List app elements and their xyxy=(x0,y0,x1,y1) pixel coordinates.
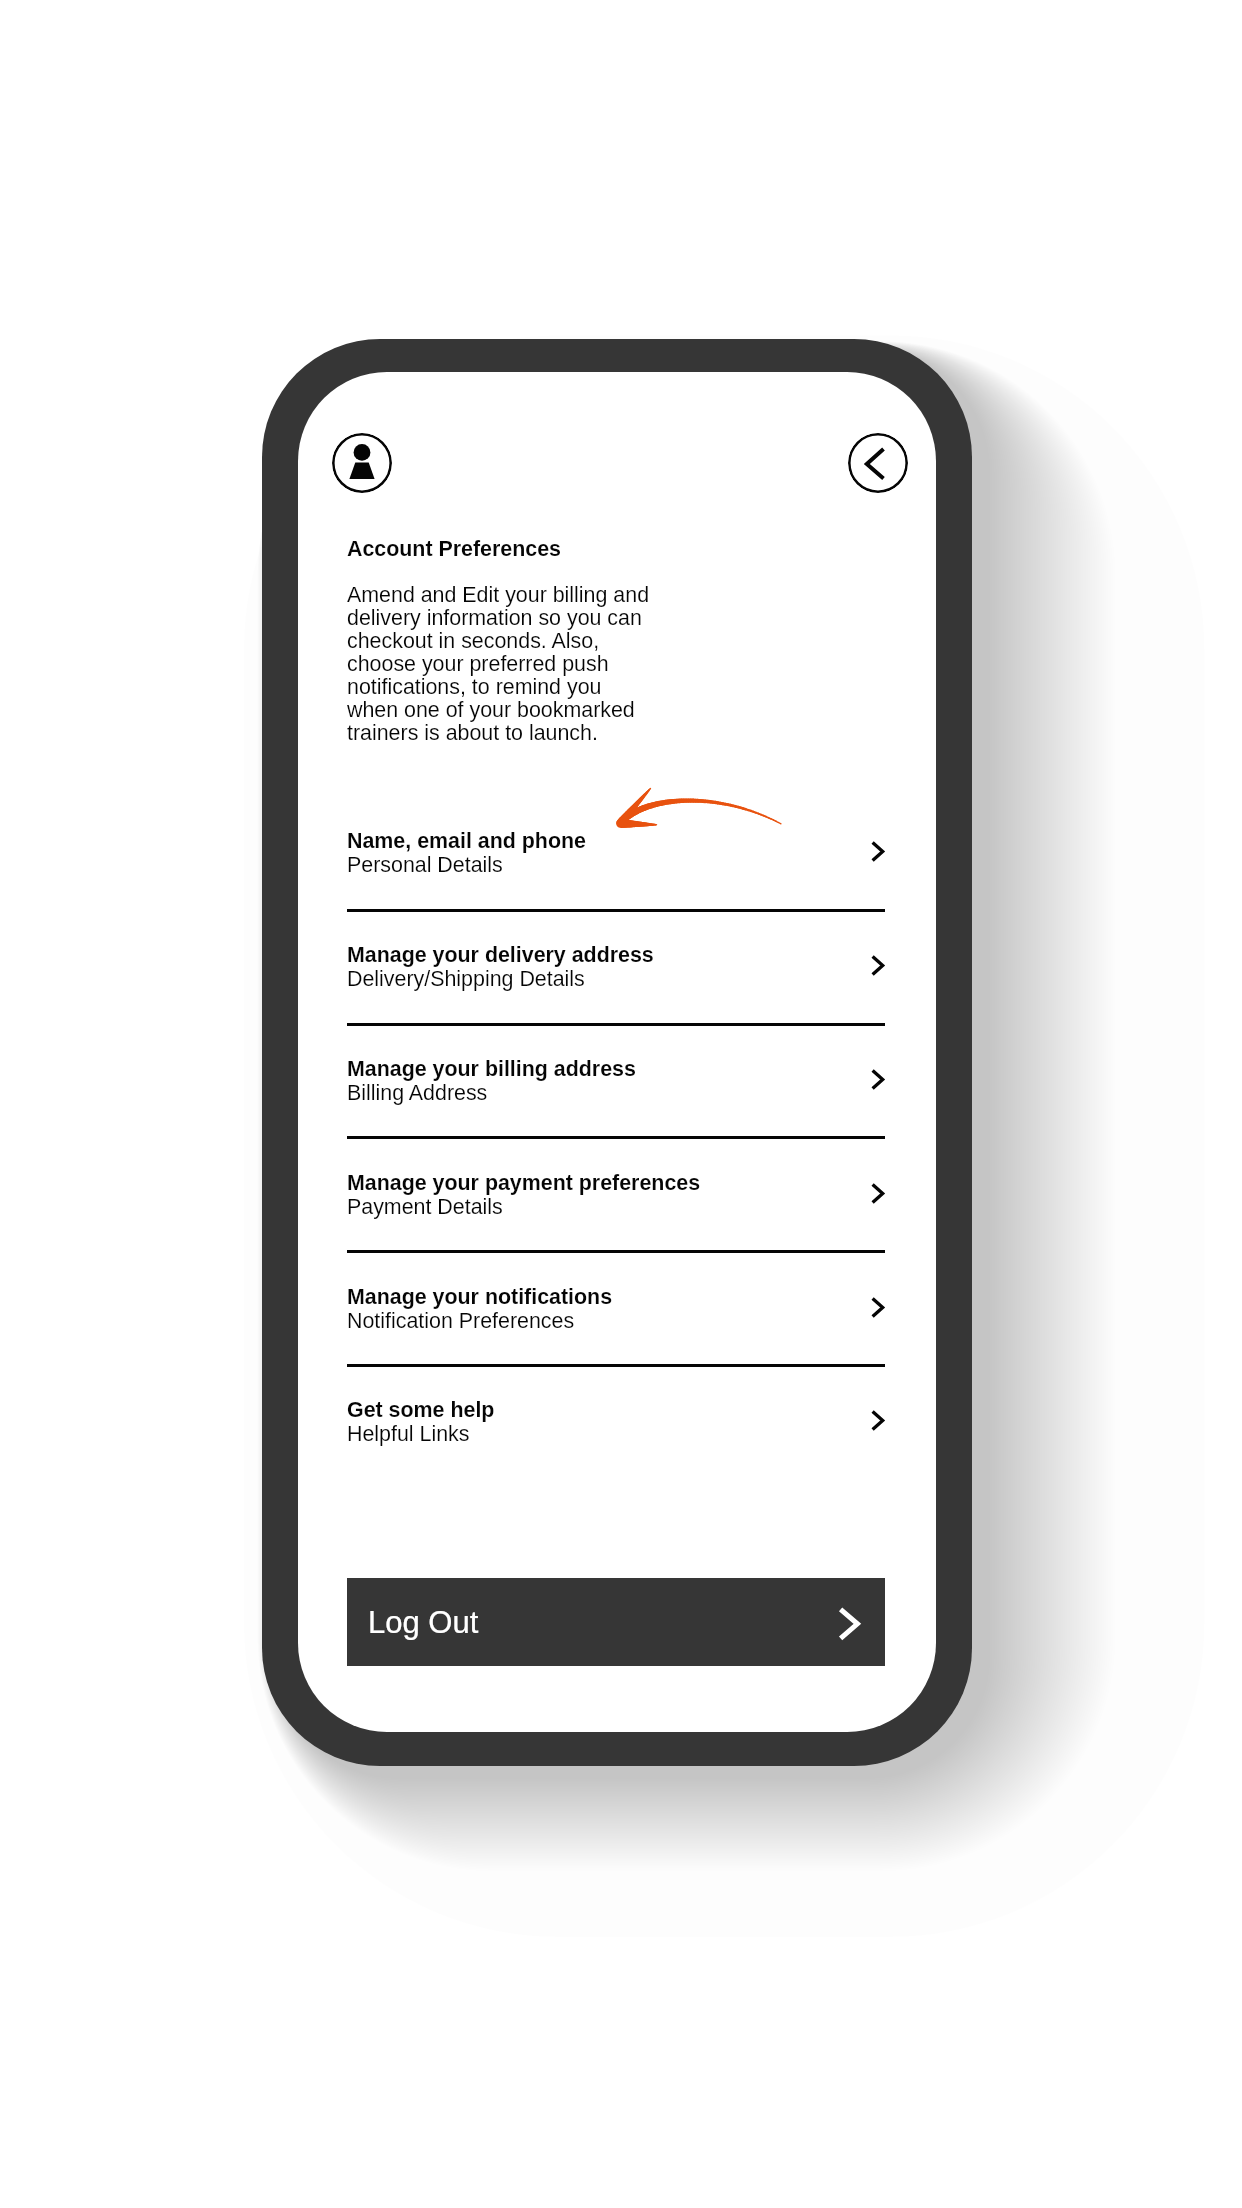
staticText: Name, email and phone xyxy=(347,828,586,853)
staticText: Manage your delivery address xyxy=(347,942,654,967)
button[interactable]: Manage your delivery address xyxy=(298,910,936,1024)
button[interactable]: Manage your notifications xyxy=(298,1252,936,1366)
staticText: Account Preferences xyxy=(347,536,561,561)
staticText: Amend and Edit your billing and delivery… xyxy=(347,584,650,745)
button[interactable]: Account profile xyxy=(332,433,392,493)
staticText: Manage your payment preferences xyxy=(347,1170,701,1195)
button[interactable]: Get some help xyxy=(298,1365,936,1479)
button[interactable]: Manage your payment preferences xyxy=(298,1138,936,1252)
button[interactable]: Name, email and phone xyxy=(298,796,936,910)
staticText: Manage your billing address xyxy=(347,1056,636,1081)
staticText: Delivery/Shipping Details xyxy=(347,966,585,991)
button[interactable]: Log Out xyxy=(347,1578,885,1666)
staticText: Billing Address xyxy=(347,1080,488,1105)
staticText: Helpful Links xyxy=(347,1421,470,1446)
staticText: Log Out xyxy=(368,1603,479,1641)
button[interactable]: Back xyxy=(848,433,908,493)
staticText: Notification Preferences xyxy=(347,1308,575,1333)
staticText: Manage your notifications xyxy=(347,1284,613,1309)
staticText: Personal Details xyxy=(347,852,503,877)
button[interactable]: Manage your billing address xyxy=(298,1024,936,1138)
staticText: Get some help xyxy=(347,1397,495,1422)
staticText: Payment Details xyxy=(347,1194,503,1219)
